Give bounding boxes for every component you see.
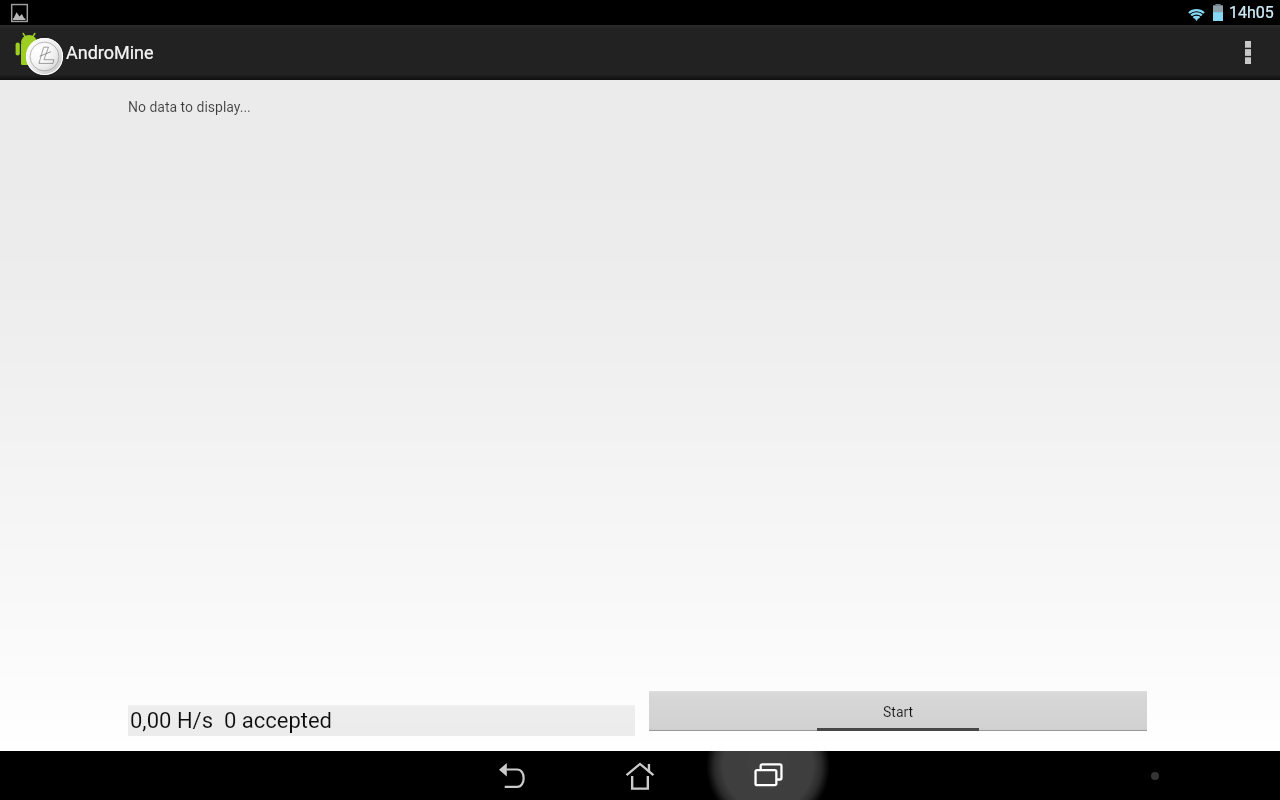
staticText: AndroMine: [66, 42, 154, 63]
staticText: 0,00 H/s 0 accepted: [130, 708, 333, 734]
button[interactable]: Home: [608, 751, 672, 800]
staticText: 14h05: [1229, 3, 1274, 22]
button[interactable]: More options: [1232, 25, 1280, 80]
staticText: Start: [883, 704, 914, 720]
staticText: No data to display...: [128, 99, 251, 115]
button[interactable]: Back: [480, 751, 544, 800]
button[interactable]: AndroMine: [0, 25, 164, 80]
button[interactable]: Start: [649, 691, 1147, 731]
button[interactable]: Recent apps: [736, 751, 800, 800]
